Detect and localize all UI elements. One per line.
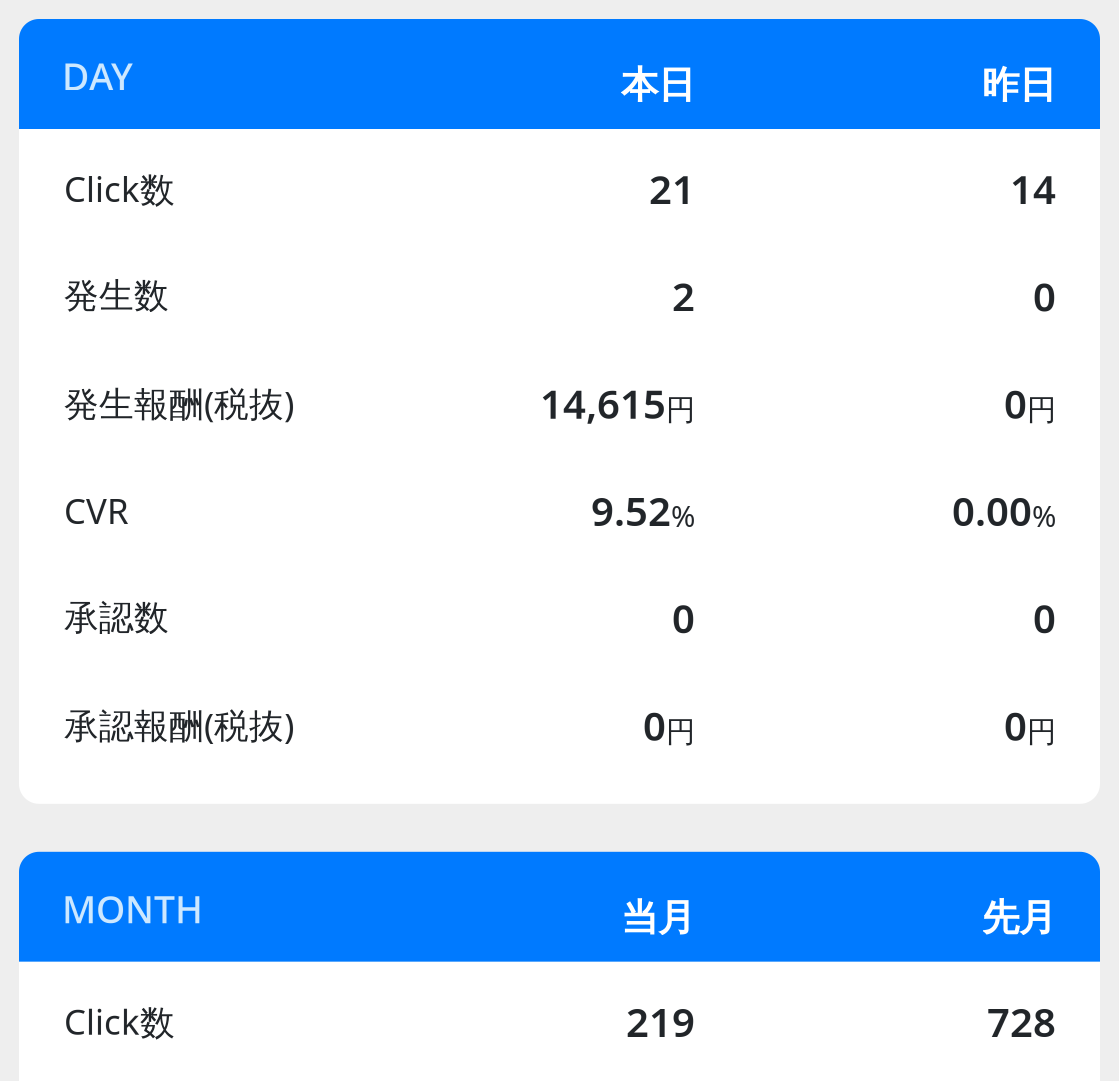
staticText: 14,615 [540, 376, 666, 430]
staticText: CVR [64, 487, 129, 534]
staticText: MONTH [62, 883, 203, 934]
staticText: Click数 [64, 165, 175, 212]
staticText: 0.00 [952, 483, 1032, 538]
staticText: 承認報酬(税抜) [64, 701, 294, 749]
staticText: 先月 [982, 894, 1056, 941]
staticText: 0 [1004, 698, 1027, 752]
staticText: Click数 [64, 998, 175, 1045]
staticText: 219 [626, 994, 695, 1049]
staticText: 承認数 [64, 596, 169, 640]
staticText: 0 [672, 591, 695, 645]
staticText: 円 [1027, 713, 1056, 750]
staticText: 2 [672, 269, 695, 323]
staticText: 9.52 [591, 483, 671, 538]
staticText: 発生数 [64, 274, 169, 318]
staticText: % [671, 496, 695, 536]
staticText: 0 [1033, 269, 1056, 323]
staticText: 円 [666, 391, 695, 428]
staticText: 0 [643, 698, 666, 752]
staticText: 728 [987, 994, 1056, 1049]
staticText: 14 [1010, 161, 1056, 216]
staticText: 本日 [621, 61, 695, 108]
staticText: 0 [1004, 376, 1027, 430]
staticText: 昨日 [982, 61, 1056, 108]
staticText: 発生報酬(税抜) [64, 380, 294, 427]
staticText: 円 [1027, 391, 1056, 428]
staticText: 当月 [621, 894, 695, 941]
staticText: DAY [62, 51, 133, 101]
staticText: % [1032, 496, 1056, 536]
staticText: 円 [666, 713, 695, 750]
staticText: 21 [649, 161, 695, 216]
staticText: 0 [1033, 591, 1056, 645]
